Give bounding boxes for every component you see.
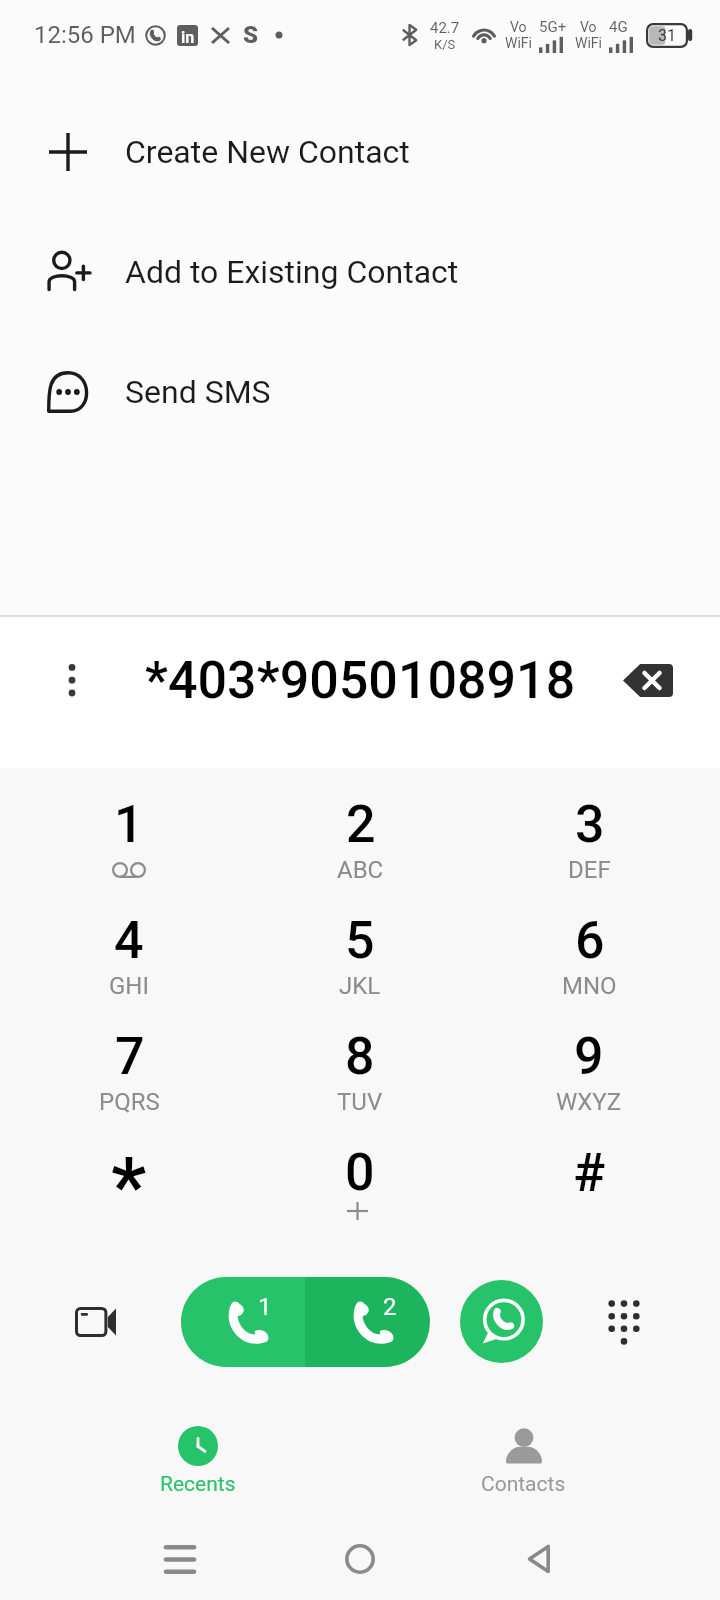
button[interactable]: More options [42,650,102,710]
staticText: S [243,21,259,49]
button[interactable]: 9 [474,1025,704,1141]
staticText: in [181,28,195,46]
button[interactable]: Recents [108,1414,288,1514]
staticText: 4G [609,18,628,36]
button[interactable]: 6 [474,909,704,1025]
button[interactable]: 8 [245,1025,475,1141]
button[interactable]: Create New Contact [0,92,720,212]
staticText: K/S [434,37,456,52]
staticText: ABC [337,856,384,884]
button[interactable]: Call with SIM 2 [305,1277,430,1367]
button[interactable]: 4 [14,909,244,1025]
button[interactable]: Video call [45,1272,145,1372]
staticText: PQRS [99,1088,160,1116]
staticText: 1 [114,794,144,855]
staticText: Contacts [481,1472,566,1497]
button[interactable]: WhatsApp call [460,1280,543,1363]
staticText: # [573,1142,606,1204]
button[interactable]: 5 [245,909,475,1025]
button[interactable]: 7 [14,1025,244,1141]
staticText: 3 [575,794,605,855]
staticText: DEF [568,856,611,884]
staticText: Create New Contact [125,133,410,171]
staticText: *403*9050108918 [145,650,576,711]
staticText: GHI [109,972,149,1000]
button[interactable]: # [474,1141,704,1257]
staticText: 5G+ [539,18,567,36]
button[interactable]: 3 [474,793,704,909]
button[interactable]: Send SMS [0,332,720,452]
button[interactable]: 2 [245,793,475,909]
staticText: Recents [160,1472,236,1497]
staticText: 1 [258,1293,272,1321]
button[interactable]: Call with SIM 1 [181,1277,305,1367]
button[interactable]: Add to Existing Contact [0,212,720,332]
staticText: TUV [337,1088,383,1116]
staticText: 0 [345,1142,375,1203]
staticText: JKL [339,972,381,1000]
button[interactable]: 0 [245,1141,475,1257]
button[interactable]: Keypad [574,1272,674,1372]
button[interactable]: 1 [14,793,244,909]
staticText: 12:56 PM [34,21,136,49]
staticText: 6 [575,910,605,971]
staticText: Vo [510,19,527,35]
staticText: 8 [345,1026,375,1087]
staticText: * [111,1140,147,1202]
staticText: Send SMS [125,373,271,411]
staticText: WiFi [505,35,532,51]
button[interactable]: Contacts [433,1414,613,1514]
staticText: 7 [115,1026,145,1087]
staticText: 4 [114,910,144,971]
staticText: WiFi [575,35,602,51]
staticText: 2 [383,1293,397,1321]
staticText: WXYZ [556,1088,622,1116]
button[interactable]: Back [488,1509,588,1600]
staticText: 9 [574,1026,604,1087]
button[interactable]: Backspace [618,650,678,710]
staticText: 42.7 [430,19,460,37]
staticText: 5 [345,910,375,971]
staticText: Vo [580,19,597,35]
staticText: Add to Existing Contact [125,253,459,291]
staticText: 31 [658,26,676,45]
button[interactable]: Home [310,1509,410,1600]
button[interactable]: * [14,1141,244,1257]
button[interactable]: Recent apps [130,1509,230,1600]
staticText: 2 [346,794,376,855]
staticText: MNO [562,972,617,1000]
